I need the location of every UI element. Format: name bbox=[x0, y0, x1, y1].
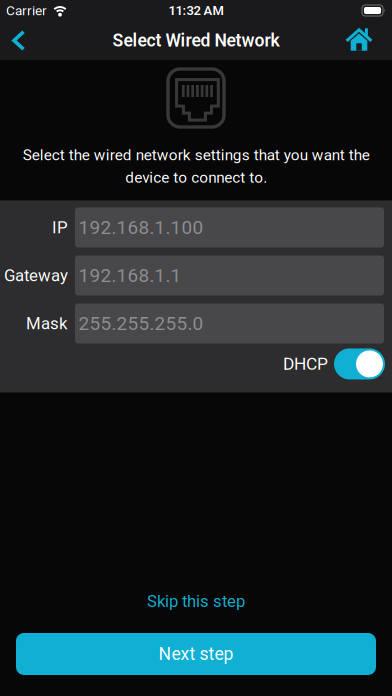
button[interactable]: Home bbox=[345, 21, 392, 59]
staticText: 11:32 AM bbox=[168, 3, 223, 18]
button[interactable]: Skip this step bbox=[147, 591, 245, 611]
button[interactable]: Next step bbox=[0, 633, 392, 675]
staticText: Gateway bbox=[4, 266, 68, 285]
staticText: IP bbox=[52, 218, 68, 237]
staticText: Carrier bbox=[6, 2, 47, 18]
staticText: Select the wired network settings that y… bbox=[22, 146, 369, 186]
button[interactable]: Back bbox=[0, 21, 27, 60]
staticText: 255.255.255.0 bbox=[78, 312, 203, 334]
staticText: 192.168.1.1 bbox=[78, 264, 181, 286]
staticText: Skip this step bbox=[147, 591, 245, 611]
staticText: 192.168.1.100 bbox=[78, 216, 203, 238]
staticText: Next step bbox=[158, 644, 233, 664]
staticText: DHCP bbox=[283, 354, 328, 374]
staticText: Select Wired Network bbox=[112, 30, 279, 51]
button[interactable]: DHCP bbox=[334, 348, 385, 379]
staticText: Mask bbox=[26, 314, 68, 333]
